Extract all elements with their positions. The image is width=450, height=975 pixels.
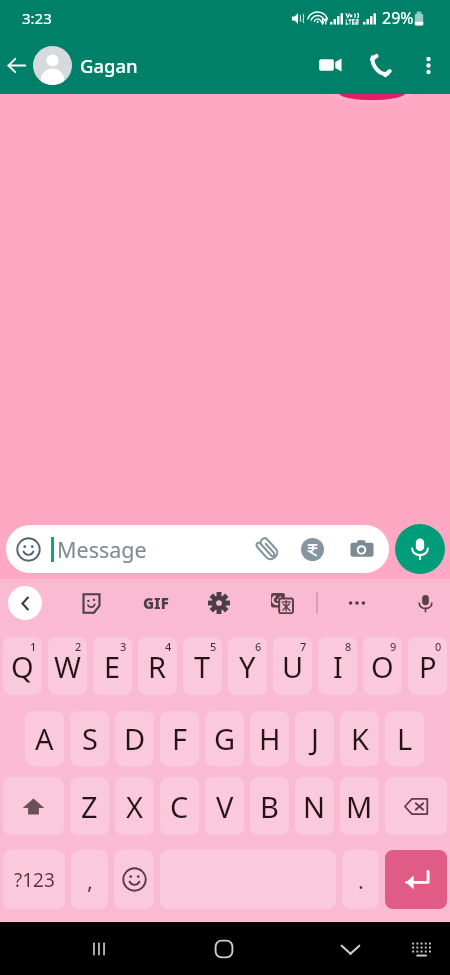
staticText: Q [11, 647, 34, 686]
staticText: T [194, 647, 211, 686]
staticText: 29% [382, 7, 414, 29]
button[interactable]: T [183, 637, 222, 695]
button[interactable]: Back [0, 36, 32, 94]
staticText: K [351, 719, 369, 758]
staticText: 0 [435, 639, 442, 654]
staticText: 9 [390, 639, 397, 654]
staticText: O [371, 647, 394, 686]
button[interactable]: GIF [136, 583, 176, 623]
button[interactable]: Camera [344, 531, 380, 567]
staticText: I [333, 647, 343, 686]
staticText: M [346, 787, 373, 826]
button[interactable]: Stickers [74, 586, 108, 620]
button[interactable]: Backspace [385, 777, 447, 835]
staticText: 5 [210, 639, 217, 654]
staticText: . [358, 865, 364, 895]
staticText: R [148, 647, 167, 686]
staticText: 7 [300, 639, 307, 654]
staticText: J [311, 719, 319, 758]
staticText: N [303, 787, 326, 826]
staticText: C [170, 787, 189, 826]
button[interactable]: Voice message [395, 524, 445, 574]
button[interactable]: More [340, 586, 374, 620]
staticText: GIF [143, 593, 169, 613]
button[interactable]: More options [406, 36, 450, 94]
button[interactable]: Video call [306, 36, 354, 94]
staticText: G [214, 719, 236, 758]
button[interactable]: V [205, 777, 244, 835]
staticText: Y [239, 647, 256, 686]
button[interactable]: ?123 [3, 850, 65, 909]
button[interactable]: Collapse toolbar [8, 586, 42, 620]
staticText: B [260, 787, 279, 826]
button[interactable]: H [250, 711, 289, 766]
staticText: H [259, 719, 281, 758]
button[interactable]: Q [3, 637, 42, 695]
button[interactable]: Switch keyboard [397, 925, 445, 973]
button[interactable]: Y [228, 637, 267, 695]
button[interactable]: Message [6, 525, 389, 573]
button[interactable]: Home [200, 925, 248, 973]
staticText: D [124, 719, 146, 758]
button[interactable]: Recents [75, 925, 123, 973]
button[interactable]: Payment [294, 531, 330, 567]
staticText: 3:23 [22, 8, 52, 28]
staticText: , [87, 865, 93, 895]
staticText: L [397, 719, 413, 758]
button[interactable]: Enter [385, 850, 447, 909]
button[interactable]: F [160, 711, 199, 766]
staticText: 2 [75, 639, 82, 654]
button[interactable]: X [115, 777, 154, 835]
button[interactable]: Emoji [114, 850, 154, 909]
button[interactable]: R [138, 637, 177, 695]
button[interactable]: N [295, 777, 334, 835]
staticText: 1 [30, 639, 37, 654]
button[interactable]: Gagan [32, 36, 306, 94]
staticText: X [126, 787, 143, 826]
button[interactable]: K [340, 711, 379, 766]
button[interactable]: S [70, 711, 109, 766]
button[interactable]: Z [70, 777, 109, 835]
button[interactable]: . [342, 850, 379, 909]
staticText: E [104, 647, 121, 686]
button[interactable]: Shift [3, 777, 64, 835]
button[interactable]: Translate [265, 586, 299, 620]
staticText: A [35, 719, 54, 758]
button[interactable]: W [48, 637, 87, 695]
staticText: Z [81, 787, 98, 826]
button[interactable]: O [363, 637, 402, 695]
staticText: 6 [255, 639, 262, 654]
staticText: F [172, 719, 188, 758]
button[interactable]: C [160, 777, 199, 835]
staticText: Message [57, 535, 147, 564]
button[interactable]: U [273, 637, 312, 695]
button[interactable]: A [25, 711, 64, 766]
staticText: U [282, 647, 304, 686]
button[interactable]: B [250, 777, 289, 835]
button[interactable]: D [115, 711, 154, 766]
button[interactable]: G [205, 711, 244, 766]
button[interactable]: I [318, 637, 357, 695]
button[interactable]: E [93, 637, 132, 695]
button[interactable]: M [340, 777, 379, 835]
staticText: S [82, 719, 98, 758]
staticText: V [216, 787, 234, 826]
button[interactable]: Voice call [354, 36, 406, 94]
button[interactable]: P [408, 637, 447, 695]
staticText: 8 [345, 639, 352, 654]
button[interactable]: Attach [249, 531, 285, 567]
button[interactable]: Voice input [407, 585, 443, 621]
staticText: 4 [165, 639, 172, 654]
button[interactable]: Hide keyboard [326, 925, 374, 973]
button[interactable]: Settings [202, 586, 236, 620]
staticText: W [54, 647, 81, 686]
staticText: Gagan [80, 53, 138, 78]
staticText: P [419, 647, 437, 686]
staticText: 3 [120, 639, 127, 654]
staticText: ?123 [14, 867, 55, 893]
button[interactable]: , [71, 850, 108, 909]
button[interactable]: L [385, 711, 424, 766]
button[interactable]: J [295, 711, 334, 766]
